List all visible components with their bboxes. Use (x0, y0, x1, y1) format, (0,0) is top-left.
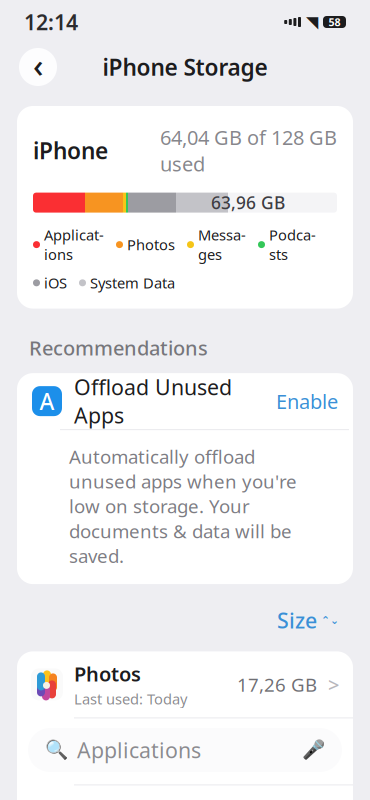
staticText: > (328, 671, 339, 698)
staticText: 🎤 (302, 739, 325, 761)
staticText: iPhone Storage (102, 52, 267, 82)
button[interactable]: ▶ (17, 718, 353, 785)
button[interactable]: Size (277, 606, 339, 634)
staticText: ⌃⌄ (321, 614, 339, 626)
staticText: Photos (74, 660, 141, 687)
staticText: Automatically offload unused apps when y… (69, 444, 297, 568)
button[interactable]: A (17, 373, 353, 429)
staticText: Messages (198, 225, 246, 264)
button[interactable]: 🔍 (28, 728, 342, 772)
staticText: 58 (328, 15, 340, 29)
staticText: Enable (276, 388, 338, 414)
staticText: 9 GB (275, 739, 317, 764)
staticText: iOS (44, 273, 67, 293)
button[interactable]: Photos (17, 651, 353, 718)
staticText: Applications (77, 736, 201, 764)
staticText: 🔍 (45, 739, 68, 761)
staticText: Last used: Today (74, 689, 187, 708)
staticText: A (39, 386, 54, 416)
staticText: ▶ (43, 745, 51, 757)
staticText: Offload Unused Apps (74, 373, 232, 429)
staticText: Podcasts (269, 225, 316, 264)
staticText: ‹ (33, 44, 43, 86)
staticText: System Data (90, 273, 175, 293)
staticText: 12:14 (24, 8, 78, 36)
staticText: YouTube (74, 727, 158, 754)
staticText: 17,26 GB (237, 672, 317, 697)
staticText: Applications (44, 225, 104, 264)
staticText: ◥ (306, 13, 318, 31)
staticText: 64,04 GB of 128 GB used (160, 124, 337, 177)
staticText: Recommendations (29, 335, 208, 361)
button[interactable]: Back (19, 48, 57, 86)
staticText: 63,96 GB (211, 191, 285, 214)
staticText: iPhone (33, 135, 108, 166)
staticText: Photos (127, 235, 175, 254)
staticText: Size (277, 606, 317, 634)
staticText: Last used: 13/11/25 (74, 756, 205, 775)
